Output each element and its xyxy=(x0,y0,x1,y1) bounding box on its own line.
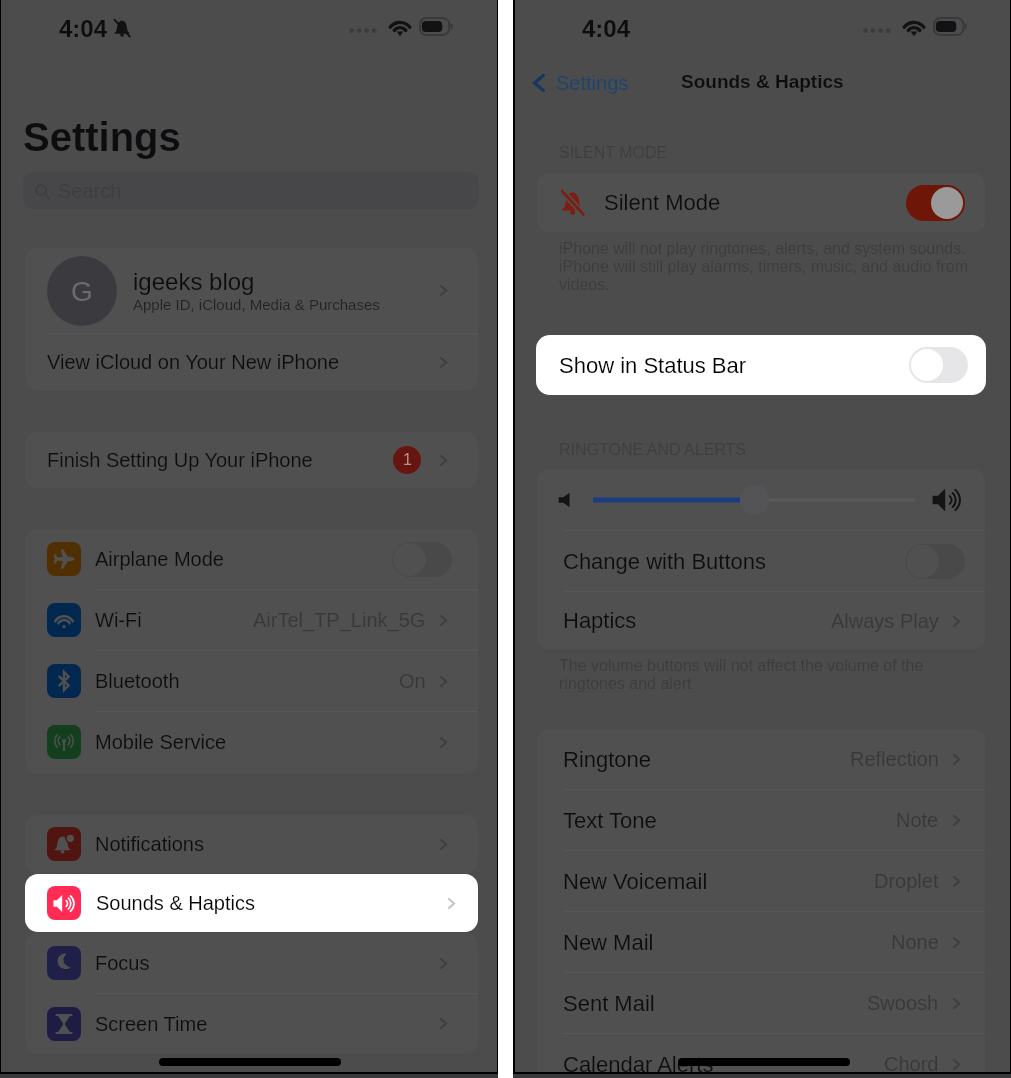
button[interactable]: Toggle xyxy=(906,185,965,221)
other: Open xyxy=(435,673,452,690)
button[interactable]: Toggle xyxy=(392,542,452,577)
other: Open xyxy=(948,934,965,951)
staticText: G xyxy=(71,276,93,307)
button[interactable]: Finish Setting Up Your iPhone xyxy=(25,432,478,488)
button[interactable]: Airplane Mode xyxy=(25,529,478,589)
other: Open xyxy=(948,812,965,829)
staticText: Notifications xyxy=(95,833,204,855)
button[interactable]: Ringtone xyxy=(537,729,985,789)
other: Open xyxy=(948,995,965,1012)
button[interactable]: Sent Mail xyxy=(537,973,985,1033)
staticText: Airplane Mode xyxy=(95,548,224,570)
other: Open xyxy=(435,1015,452,1032)
staticText: On xyxy=(399,670,426,692)
staticText: Wi-Fi xyxy=(95,609,142,631)
other: Open xyxy=(948,613,965,630)
other: Open xyxy=(435,354,452,371)
button[interactable]: Screen Time xyxy=(25,994,478,1053)
button[interactable]: Toggle xyxy=(905,544,965,579)
other: Open xyxy=(435,612,452,629)
staticText: Screen Time xyxy=(95,1013,208,1035)
staticText: 1 xyxy=(403,451,412,469)
staticText: Bluetooth xyxy=(95,670,180,692)
staticText: Note xyxy=(896,809,939,831)
staticText: Sounds & Haptics xyxy=(96,892,255,914)
staticText: RINGTONE AND ALERTS xyxy=(559,441,747,459)
other: Open xyxy=(435,282,452,299)
button[interactable]: Calendar Alerts xyxy=(537,1034,985,1078)
button[interactable]: G xyxy=(25,248,478,333)
staticText: None xyxy=(891,931,939,953)
button[interactable]: Silent Mode xyxy=(537,173,985,232)
other: Open xyxy=(948,1056,965,1073)
button[interactable]: New Voicemail xyxy=(537,851,985,911)
staticText: Swoosh xyxy=(867,992,939,1014)
staticText: ringtones and alert xyxy=(559,675,692,693)
staticText: iPhone will still play alarms, timers, m… xyxy=(559,258,969,276)
staticText: New Voicemail xyxy=(563,869,708,894)
staticText: SILENT MODE xyxy=(559,144,668,162)
staticText: View iCloud on Your New iPhone xyxy=(47,351,340,373)
button[interactable]: View iCloud on Your New iPhone xyxy=(25,334,478,390)
other: Open xyxy=(948,873,965,890)
staticText: Silent Mode xyxy=(604,190,721,215)
staticText: Sounds & Haptics xyxy=(681,71,844,92)
staticText: igeeks blog xyxy=(133,268,255,295)
button[interactable]: Bluetooth xyxy=(25,651,478,711)
button[interactable]: Mobile Service xyxy=(25,712,478,772)
staticText: Settings xyxy=(23,115,181,160)
staticText: Change with Buttons xyxy=(563,549,767,574)
other: Open xyxy=(435,836,452,853)
staticText: Calendar Alerts xyxy=(563,1052,714,1077)
staticText: Apple ID, iCloud, Media & Purchases xyxy=(133,296,380,313)
button[interactable]: Notifications xyxy=(25,815,478,873)
staticText: Haptics xyxy=(563,608,637,633)
button[interactable]: Focus xyxy=(25,933,478,993)
staticText: 4:04 xyxy=(59,15,108,42)
button[interactable]: Settings xyxy=(523,66,634,100)
staticText: The volume buttons will not affect the v… xyxy=(559,657,924,675)
other: Open xyxy=(948,751,965,768)
staticText: Reflection xyxy=(850,748,939,770)
staticText: Ringtone xyxy=(563,747,652,772)
staticText: videos. xyxy=(559,276,610,294)
staticText: AirTel_TP_Link_5G xyxy=(253,609,426,631)
staticText: Always Play xyxy=(831,610,939,632)
button[interactable]: Show in Status Bar xyxy=(536,335,986,395)
staticText: Mobile Service xyxy=(95,731,227,753)
other: Open xyxy=(435,452,452,469)
staticText: Droplet xyxy=(874,870,939,892)
staticText: Search xyxy=(58,180,122,202)
button[interactable]: Haptics xyxy=(537,592,985,649)
button[interactable]: Text Tone xyxy=(537,790,985,850)
staticText: Chord xyxy=(884,1053,939,1075)
button[interactable]: New Mail xyxy=(537,912,985,972)
staticText: iPhone will not play ringtones, alerts, … xyxy=(559,240,966,258)
staticText: Focus xyxy=(95,952,150,974)
button[interactable]: Toggle xyxy=(909,347,968,383)
staticText: New Mail xyxy=(563,930,654,955)
staticText: Settings xyxy=(556,72,629,94)
other: Open xyxy=(435,955,452,972)
staticText: 4:04 xyxy=(582,15,631,42)
button[interactable]: Wi-Fi xyxy=(25,590,478,650)
staticText: Sent Mail xyxy=(563,991,655,1016)
staticText: Finish Setting Up Your iPhone xyxy=(47,449,313,471)
staticText: Show in Status Bar xyxy=(559,353,747,378)
button[interactable]: Change with Buttons xyxy=(537,531,985,591)
other: Open xyxy=(435,734,452,751)
staticText: Text Tone xyxy=(563,808,657,833)
button[interactable]: Sounds & Haptics xyxy=(25,874,478,932)
